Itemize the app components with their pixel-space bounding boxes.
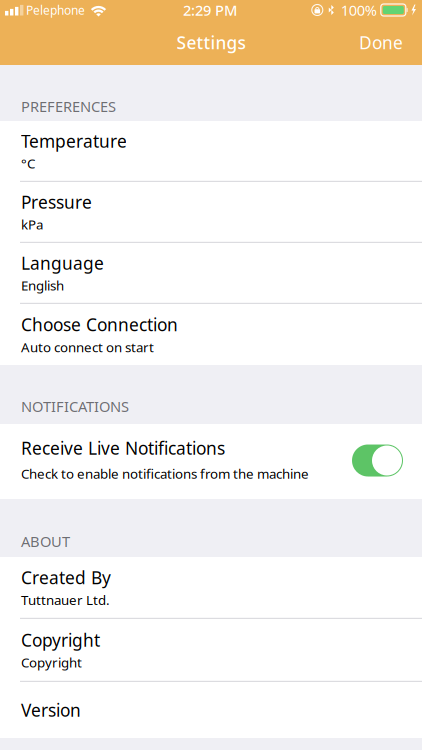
staticText: Temperature (21, 129, 127, 152)
staticText: English (21, 277, 64, 294)
staticText: Copyright (21, 654, 82, 671)
button[interactable]: Temperature (0, 121, 422, 182)
staticText: Done (359, 31, 403, 54)
staticText: Check to enable notifications from the m… (21, 465, 309, 482)
button[interactable]: Pressure (0, 182, 422, 243)
staticText: Choose Connection (21, 313, 178, 336)
button[interactable]: Language (0, 243, 422, 304)
staticText: Settings (176, 31, 245, 54)
staticText: ABOUT (21, 531, 70, 551)
staticText: Pelephone (26, 2, 85, 18)
staticText: 2:29 PM (183, 0, 237, 20)
staticText: Pressure (21, 190, 92, 213)
staticText: Version (21, 698, 81, 721)
button[interactable]: Version (0, 682, 422, 738)
staticText: Receive Live Notifications (21, 437, 225, 460)
button[interactable]: Done (343, 19, 422, 66)
staticText: Tuttnauer Ltd. (21, 591, 110, 609)
staticText: Created By (21, 566, 111, 589)
button[interactable]: Receive Live Notifications (0, 424, 422, 499)
staticText: Copyright (21, 628, 100, 651)
button[interactable]: Choose Connection (0, 304, 422, 365)
staticText: °C (21, 155, 35, 172)
staticText: Auto connect on start (21, 338, 154, 356)
button[interactable]: Copyright (0, 619, 422, 682)
staticText: NOTIFICATIONS (21, 396, 129, 416)
staticText: Language (21, 251, 104, 274)
staticText: kPa (21, 216, 43, 233)
button[interactable]: Created By (0, 557, 422, 619)
staticText: 100% (341, 0, 377, 20)
staticText: PREFERENCES (21, 96, 116, 116)
